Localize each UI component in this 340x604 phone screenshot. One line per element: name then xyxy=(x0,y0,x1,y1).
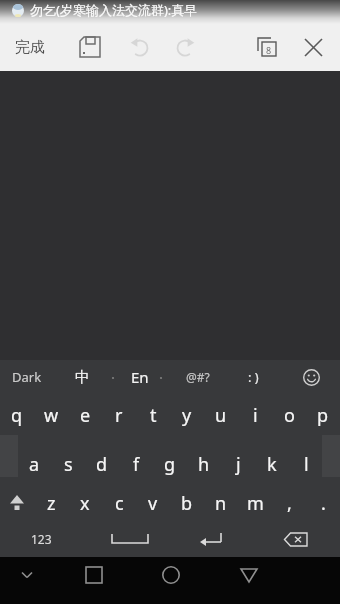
button[interactable]: j xyxy=(221,441,255,487)
staticText: Dark xyxy=(12,368,42,386)
button[interactable]: h xyxy=(187,441,221,487)
button[interactable]: w xyxy=(34,392,68,438)
staticText: j xyxy=(236,452,241,477)
button[interactable] xyxy=(235,561,263,589)
staticText: x xyxy=(80,491,90,516)
button[interactable]: d xyxy=(85,441,119,487)
button[interactable] xyxy=(0,483,34,523)
button[interactable]: x xyxy=(68,483,102,523)
button[interactable] xyxy=(189,523,233,555)
button[interactable]: z xyxy=(34,483,68,523)
button[interactable]: b xyxy=(170,483,204,523)
staticText: t xyxy=(150,403,157,428)
button[interactable]: . xyxy=(306,483,340,523)
button[interactable] xyxy=(157,561,185,589)
button[interactable]: g xyxy=(153,441,187,487)
staticText: r xyxy=(115,403,123,428)
button[interactable] xyxy=(171,33,199,61)
staticText: v xyxy=(148,491,158,516)
staticText: e xyxy=(80,403,91,428)
button[interactable]: e xyxy=(68,392,102,438)
button[interactable]: s xyxy=(51,441,85,487)
staticText: b xyxy=(181,491,193,516)
button[interactable]: a xyxy=(17,441,51,487)
staticText: m xyxy=(247,491,264,516)
button[interactable]: q xyxy=(0,392,34,438)
staticText: . xyxy=(321,491,326,516)
button[interactable]: , xyxy=(272,483,306,523)
button[interactable]: Dark xyxy=(3,362,51,392)
staticText: 中 xyxy=(75,368,90,387)
staticText: h xyxy=(198,452,210,477)
staticText: 勿乞(岁寒输入法交流群):真早 xyxy=(30,1,198,19)
staticText: u xyxy=(215,403,227,428)
staticText: n xyxy=(215,491,227,516)
button[interactable]: @#? xyxy=(175,362,221,392)
button[interactable]: m xyxy=(238,483,272,523)
staticText: 123 xyxy=(31,531,52,547)
button[interactable]: f xyxy=(119,441,153,487)
staticText: i xyxy=(253,403,258,428)
staticText: , xyxy=(287,491,292,516)
staticText: f xyxy=(133,452,140,477)
button[interactable]: u xyxy=(204,392,238,438)
staticText: a xyxy=(29,452,40,477)
button[interactable]: 完成 xyxy=(4,24,56,71)
button[interactable]: p xyxy=(306,392,340,438)
staticText: s xyxy=(64,452,73,477)
button[interactable] xyxy=(296,362,326,392)
staticText: 8 xyxy=(266,44,272,56)
staticText: d xyxy=(96,452,108,477)
button[interactable] xyxy=(76,33,104,61)
button[interactable]: o xyxy=(272,392,306,438)
button[interactable]: n xyxy=(204,483,238,523)
staticText: k xyxy=(267,452,277,477)
staticText: l xyxy=(304,452,309,477)
staticText: z xyxy=(47,491,56,516)
button[interactable]: 123 xyxy=(19,523,63,555)
staticText: p xyxy=(317,403,329,428)
staticText: q xyxy=(11,403,23,428)
button[interactable]: y xyxy=(170,392,204,438)
staticText: o xyxy=(284,403,295,428)
button[interactable]: k xyxy=(255,441,289,487)
button[interactable]: r xyxy=(102,392,136,438)
staticText: : ) xyxy=(248,368,259,386)
button[interactable]: c xyxy=(102,483,136,523)
button[interactable]: 中 xyxy=(62,362,102,392)
button[interactable] xyxy=(299,33,327,61)
button[interactable]: En xyxy=(120,362,160,392)
button[interactable] xyxy=(13,561,41,589)
button[interactable]: l xyxy=(289,441,323,487)
button[interactable]: : ) xyxy=(233,362,273,392)
staticText: w xyxy=(44,403,59,428)
button[interactable]: t xyxy=(136,392,170,438)
staticText: En xyxy=(131,367,149,387)
staticText: 完成 xyxy=(15,38,45,57)
staticText: @#? xyxy=(186,369,210,385)
button[interactable] xyxy=(80,561,108,589)
button[interactable] xyxy=(126,33,154,61)
button[interactable] xyxy=(108,523,152,555)
staticText: g xyxy=(164,452,176,477)
staticText: c xyxy=(115,491,124,516)
staticText: y xyxy=(182,403,192,428)
button[interactable]: 8 xyxy=(253,33,281,61)
button[interactable]: v xyxy=(136,483,170,523)
button[interactable] xyxy=(274,523,318,555)
button[interactable]: i xyxy=(238,392,272,438)
